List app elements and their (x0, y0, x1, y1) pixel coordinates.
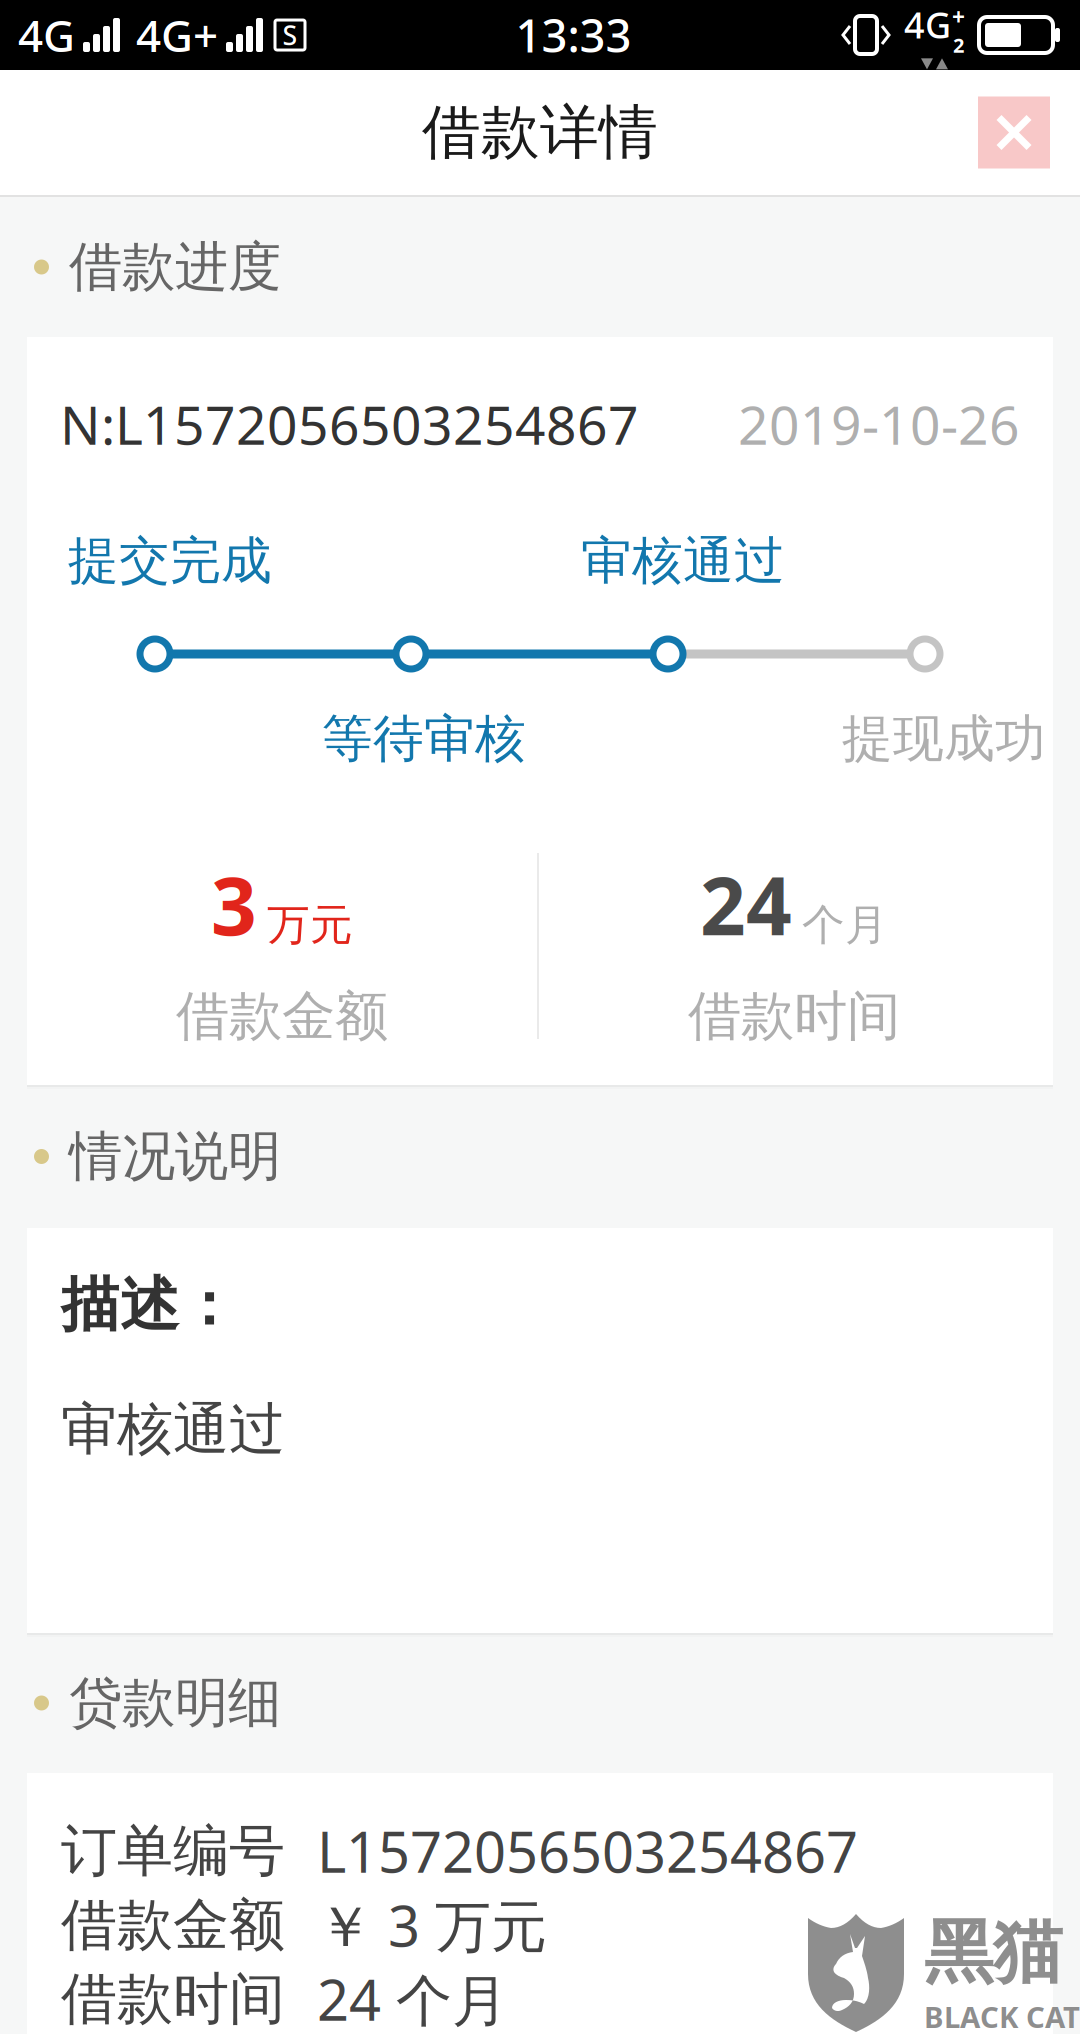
staticText: 24 (700, 851, 792, 957)
staticText: 3 (211, 851, 257, 957)
staticText: S (282, 17, 297, 53)
staticText: L1572056503254867 (317, 1814, 858, 1888)
staticText: 审核通过 (61, 1395, 285, 1464)
staticText: 13:33 (515, 5, 631, 65)
staticText: 万元 (267, 899, 353, 951)
staticText: 4G (18, 6, 75, 64)
staticText: 订单编号 (61, 1817, 285, 1885)
staticText: 贷款明细 (69, 1670, 281, 1736)
staticText: 借款金额 (176, 983, 388, 1049)
staticText: N:L1572056503254867 (60, 389, 639, 459)
staticText: 黑猫 (924, 1910, 1062, 1995)
staticText: 借款详情 (422, 96, 658, 169)
staticText: 借款时间 (688, 983, 900, 1049)
staticText: 借款进度 (69, 234, 281, 300)
staticText: 情况说明 (69, 1124, 281, 1189)
staticText: 2019-10-26 (738, 389, 1020, 459)
staticText: 4G+ (136, 6, 218, 64)
staticText: 24 个月 (317, 1962, 508, 2034)
staticText: 个月 (802, 899, 888, 951)
staticText: 描述： (61, 1269, 238, 1341)
staticText: 提现成功 (842, 708, 1046, 770)
staticText: + (952, 2, 965, 32)
staticText: 借款时间 (61, 1965, 285, 2033)
staticText: 等待审核 (322, 708, 526, 770)
staticText: 2 (953, 32, 964, 58)
staticText: 提交完成 (68, 530, 272, 592)
staticText: ￥ 3 万元 (317, 1888, 547, 1962)
staticText: BLACK CAT (924, 1997, 1080, 2034)
button[interactable]: 关闭 (978, 96, 1050, 168)
staticText: 审核通过 (581, 530, 785, 592)
staticText: 4G (904, 1, 951, 48)
staticText: 借款金额 (61, 1891, 285, 1959)
